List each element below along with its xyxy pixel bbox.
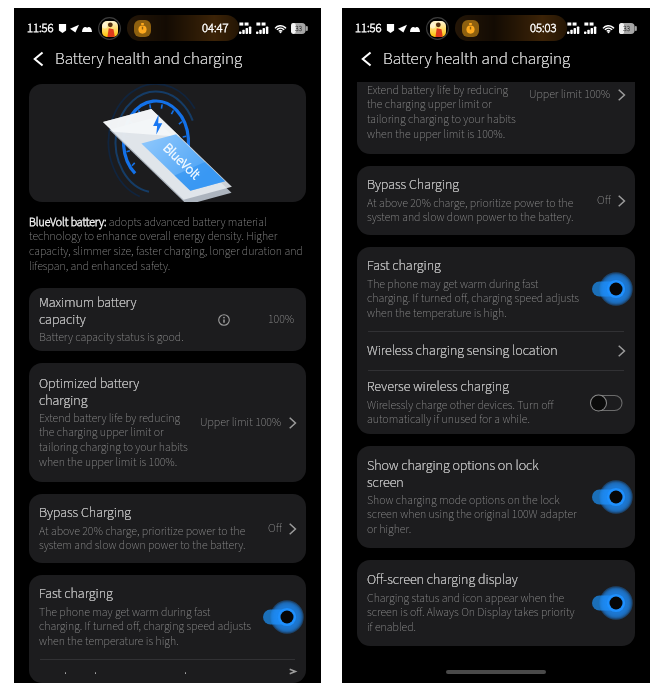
staticText: The phone may get warm during fast charg…	[39, 604, 254, 650]
button[interactable]: Bypass Charging	[357, 166, 635, 235]
staticText: Maximum battery capacity	[39, 293, 137, 329]
staticText: Battery health and charging	[55, 47, 243, 71]
staticText: Wirelessly charge other devices. Turn of…	[367, 397, 582, 428]
staticText: Bypass Charging	[39, 503, 132, 523]
staticText: Upper limit 100%	[529, 86, 611, 103]
staticText: Optimized battery charging	[39, 374, 140, 410]
staticText: 33	[623, 23, 631, 34]
staticText: Battery capacity status is good.	[39, 329, 184, 346]
staticText: Wireless charging sensing location	[39, 669, 230, 674]
button[interactable]: Switch on	[260, 606, 296, 628]
staticText: Off	[268, 520, 282, 537]
button[interactable]: Switch on	[589, 278, 625, 300]
button[interactable]: Back	[352, 45, 380, 73]
button[interactable]: Bypass Charging	[29, 494, 306, 563]
staticText: Bypass Charging	[367, 175, 460, 195]
staticText: Wireless charging sensing location	[367, 341, 558, 361]
staticText: BlueVolt battery: adopts advanced batter…	[29, 214, 306, 275]
button[interactable]: Timer	[127, 15, 239, 41]
staticText: Battery health and charging	[383, 47, 571, 71]
staticText: 33	[295, 23, 303, 34]
button[interactable]: Fast charging	[29, 575, 306, 659]
staticText: 11:56	[27, 19, 54, 37]
button[interactable]: Switch off	[589, 392, 625, 414]
button[interactable]: Back	[24, 45, 52, 73]
button[interactable]: Reverse wireless charging	[357, 371, 635, 434]
staticText: 100%	[268, 311, 295, 328]
button[interactable]: Wireless charging sensing location	[357, 332, 635, 370]
staticText: At above 20% charge, prioritize power to…	[367, 195, 587, 226]
staticText: 04:47	[202, 19, 229, 37]
button[interactable]: Optimized battery charging	[29, 363, 306, 482]
staticText: Charging status and icon appear when the…	[367, 590, 579, 636]
staticText: Fast charging	[39, 584, 113, 604]
button[interactable]: Off-screen charging display	[357, 560, 635, 646]
button[interactable]: Show charging options on lock screen	[357, 446, 635, 548]
button[interactable]: Timer	[455, 15, 567, 41]
staticText: Extend battery life by reducing the char…	[367, 82, 520, 143]
button[interactable]: Switch on	[589, 592, 625, 614]
button[interactable]: Wireless charging sensing location	[29, 660, 306, 683]
staticText: Reverse wireless charging	[367, 377, 509, 397]
button[interactable]: Maximum battery capacity	[29, 288, 306, 351]
staticText: Show charging mode options on the lock s…	[367, 492, 582, 538]
staticText: Off-screen charging display	[367, 570, 518, 590]
staticText: Off	[597, 192, 611, 209]
button[interactable]: Fast charging	[357, 247, 635, 331]
staticText: Upper limit 100%	[200, 414, 282, 431]
staticText: The phone may get warm during fast charg…	[367, 276, 582, 322]
button[interactable]: Optimized battery charging	[357, 82, 635, 154]
staticText: Show charging options on lock screen	[367, 456, 539, 492]
staticText: Fast charging	[367, 256, 441, 276]
staticText: At above 20% charge, prioritize power to…	[39, 523, 259, 554]
staticText: Extend battery life by reducing the char…	[39, 410, 192, 471]
button[interactable]: Switch on	[589, 486, 625, 508]
staticText: 05:03	[530, 19, 557, 37]
staticText: 11:56	[355, 19, 382, 37]
